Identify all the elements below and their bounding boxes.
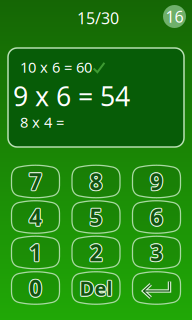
staticText: 4 — [28, 203, 41, 233]
staticText: 6 — [149, 202, 162, 232]
staticText: 0 — [30, 274, 43, 304]
staticText: 6 — [149, 201, 162, 231]
staticText: 7 — [30, 167, 43, 197]
button[interactable]: 0 — [11, 272, 59, 304]
staticText: 0 — [29, 273, 42, 303]
staticText: 16 — [165, 6, 183, 27]
staticText: 1 — [30, 237, 43, 267]
staticText: 5 — [89, 201, 102, 231]
staticText: 7 — [30, 166, 43, 196]
staticText: 9 — [150, 166, 163, 196]
staticText: 4 — [29, 202, 42, 232]
staticText: 2 — [89, 237, 102, 267]
staticText: 5 — [88, 202, 101, 232]
staticText: Del — [80, 275, 113, 302]
button[interactable]: 7 — [11, 165, 59, 197]
button[interactable]: 8 — [72, 165, 120, 197]
staticText: 9 — [151, 167, 164, 197]
staticText: 5 — [89, 203, 102, 233]
staticText: 1 — [29, 236, 42, 266]
staticText: 7 — [29, 167, 42, 198]
staticText: 4 — [30, 203, 43, 233]
staticText: 9 — [151, 166, 164, 196]
button[interactable]: 1 — [11, 236, 59, 268]
staticText: 6 — [151, 201, 164, 231]
staticText: 0 — [30, 273, 43, 303]
staticText: 6 — [151, 202, 164, 232]
staticText: 3 — [150, 236, 163, 266]
button[interactable]: 4 — [11, 201, 59, 233]
button[interactable]: 9 — [132, 165, 180, 197]
staticText: 8 — [89, 166, 102, 196]
staticText: Del — [79, 274, 112, 300]
staticText: Del — [78, 275, 111, 301]
staticText: 8 — [90, 166, 103, 196]
staticText: 9 — [149, 166, 162, 196]
staticText: Del — [79, 275, 112, 302]
staticText: 6 — [150, 203, 163, 233]
staticText: 3 — [151, 237, 164, 267]
staticText: 1 — [29, 238, 42, 269]
staticText: 7 — [30, 166, 43, 196]
button[interactable]: Del — [72, 272, 120, 304]
staticText: 7 — [28, 167, 41, 197]
staticText: 2 — [89, 236, 102, 266]
staticText: 1 — [30, 238, 43, 268]
staticText: 2 — [89, 238, 102, 268]
staticText: Del — [79, 274, 112, 301]
staticText: 6 — [149, 203, 162, 233]
staticText: 5 — [90, 201, 103, 231]
staticText: 6 — [151, 203, 164, 233]
button[interactable]: Enter — [132, 272, 180, 304]
staticText: 7 — [29, 166, 42, 196]
button[interactable]: Score — [163, 5, 186, 28]
staticText: 3 — [149, 237, 162, 267]
staticText: 8 — [88, 166, 101, 196]
staticText: 4 — [28, 201, 41, 231]
staticText: 5 — [89, 203, 102, 233]
staticText: 3 — [151, 238, 164, 268]
staticText: 2 — [90, 237, 103, 267]
staticText: 0 — [30, 272, 43, 302]
staticText: 4 — [29, 203, 42, 233]
staticText: 9 — [151, 166, 164, 196]
staticText: 7 — [28, 166, 41, 196]
staticText: 2 — [89, 237, 102, 267]
staticText: 3 — [150, 238, 163, 269]
staticText: 2 — [88, 237, 101, 267]
staticText: 4 — [29, 201, 42, 231]
staticText: 0 — [28, 273, 41, 303]
staticText: 9 x 6 = 54 — [13, 78, 130, 114]
staticText: 1 — [28, 237, 41, 267]
staticText: 1 — [28, 237, 41, 267]
button[interactable]: 6 — [132, 201, 180, 233]
staticText: 6 — [150, 202, 163, 232]
button[interactable]: 5 — [72, 201, 120, 233]
staticText: 8 — [89, 167, 102, 198]
staticText: 3 — [149, 237, 162, 267]
staticText: 8 — [89, 167, 102, 197]
staticText: 0 — [29, 274, 42, 304]
staticText: 4 — [30, 201, 43, 231]
staticText: 9 — [149, 166, 162, 196]
staticText: 4 — [28, 202, 41, 232]
staticText: 0 — [29, 272, 42, 302]
staticText: 8 — [90, 167, 103, 197]
staticText: 5 — [90, 203, 103, 233]
staticText: 2 — [89, 238, 102, 269]
button[interactable]: 3 — [132, 236, 180, 268]
staticText: 2 — [90, 237, 103, 267]
staticText: 4 — [30, 202, 43, 232]
staticText: 9 — [150, 165, 163, 195]
staticText: 3 — [151, 237, 164, 267]
staticText: 8 x 4 = — [20, 112, 64, 132]
staticText: 7 — [29, 165, 42, 195]
staticText: 10 x 6 = 60 — [20, 57, 92, 77]
button[interactable]: 2 — [72, 236, 120, 268]
staticText: 7 — [28, 166, 41, 196]
staticText: 5 — [89, 201, 102, 231]
staticText: Del — [79, 276, 112, 302]
staticText: 8 — [90, 166, 103, 196]
staticText: 9 — [149, 167, 162, 197]
staticText: Del — [80, 274, 113, 301]
